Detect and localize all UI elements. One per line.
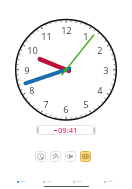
button[interactable]: Clock xyxy=(17,177,29,186)
staticText: 1 xyxy=(83,30,89,43)
staticText: 8 xyxy=(29,84,35,97)
staticText: Alarm xyxy=(46,180,52,183)
staticText: 09:41 xyxy=(58,125,78,135)
staticText: 6 xyxy=(63,103,69,116)
button[interactable]: Timer xyxy=(35,151,46,162)
button[interactable]: Layout xyxy=(80,151,91,162)
staticText: 3 xyxy=(103,64,109,77)
button[interactable]: Sound xyxy=(65,151,76,162)
button[interactable]: World xyxy=(104,177,116,186)
button[interactable]: Alarm xyxy=(43,177,55,186)
button[interactable]: 09:41 xyxy=(36,125,96,135)
button[interactable]: Effects xyxy=(50,151,61,162)
staticText: 2 xyxy=(97,44,103,57)
staticText: 10 xyxy=(27,44,38,57)
staticText: 12 xyxy=(61,24,72,37)
staticText: 5 xyxy=(83,98,89,111)
staticText: 11 xyxy=(41,30,52,43)
button[interactable]: Timer xyxy=(73,177,85,186)
staticText: 4 xyxy=(97,84,103,97)
staticText: 7 xyxy=(43,98,49,111)
staticText: Timer xyxy=(76,180,82,183)
staticText: 9 xyxy=(24,64,30,77)
staticText: Clock xyxy=(20,180,26,183)
staticText: World xyxy=(107,180,113,183)
